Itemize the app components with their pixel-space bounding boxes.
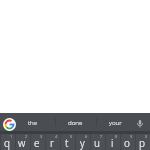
button[interactable]: u <box>91 134 105 150</box>
button[interactable]: o <box>121 134 135 150</box>
button[interactable]: your <box>98 113 132 131</box>
staticText: u <box>94 136 100 150</box>
staticText: i <box>111 136 114 150</box>
button[interactable]: done <box>57 113 93 131</box>
button[interactable] <box>134 118 145 129</box>
staticText: 9 <box>130 134 133 139</box>
button[interactable]: p <box>136 134 150 150</box>
button[interactable]: r <box>46 134 60 150</box>
staticText: t <box>65 136 69 150</box>
staticText: 0 <box>145 134 148 139</box>
staticText: y <box>80 136 85 150</box>
staticText: w <box>18 136 26 150</box>
staticText: e <box>34 136 40 150</box>
staticText: r <box>50 136 54 150</box>
button[interactable]: w <box>16 134 30 150</box>
staticText: p <box>139 136 145 150</box>
button[interactable]: e <box>31 134 45 150</box>
button[interactable]: t <box>61 134 75 150</box>
staticText: the <box>28 118 38 126</box>
button[interactable]: q <box>1 134 15 150</box>
staticText: done <box>68 118 83 126</box>
staticText: your <box>109 118 122 126</box>
staticText: o <box>124 136 130 150</box>
staticText: q <box>4 136 10 150</box>
button[interactable]: the <box>18 113 48 131</box>
staticText: 1 <box>10 134 13 139</box>
button[interactable]: i <box>106 134 120 150</box>
staticText: 2 <box>25 134 28 139</box>
staticText: 4 <box>55 134 58 139</box>
button[interactable]: y <box>76 134 90 150</box>
staticText: 3 <box>40 134 43 139</box>
staticText: 5 <box>70 134 73 139</box>
staticText: 7 <box>100 134 103 139</box>
staticText: 8 <box>115 134 118 139</box>
button[interactable] <box>3 118 16 131</box>
staticText: 6 <box>85 134 88 139</box>
